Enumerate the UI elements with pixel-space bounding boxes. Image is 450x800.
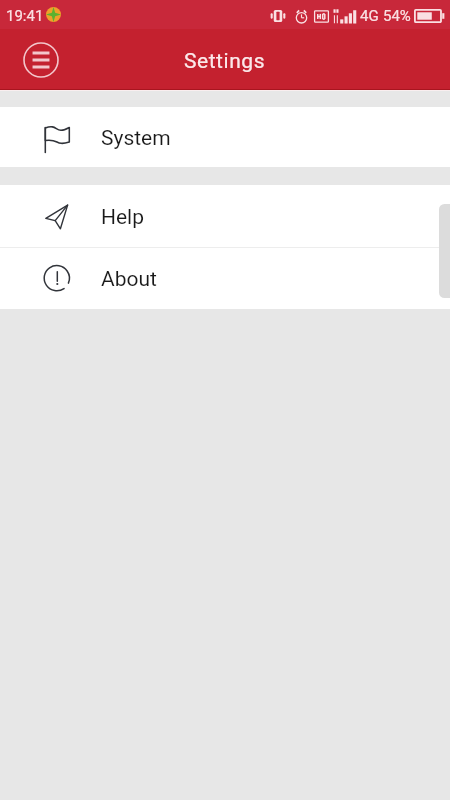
staticText: About	[101, 267, 157, 292]
button[interactable]: Help	[0, 185, 450, 247]
staticText: Settings	[184, 49, 266, 74]
staticText: 54%	[383, 7, 411, 25]
staticText: 4G	[360, 7, 379, 25]
staticText: System	[101, 126, 171, 151]
button[interactable]: System	[0, 107, 450, 167]
button[interactable]: Open navigation menu	[17, 36, 64, 83]
staticText: Help	[101, 205, 145, 230]
button[interactable]: About	[0, 248, 450, 309]
staticText: 19:41	[6, 7, 44, 25]
